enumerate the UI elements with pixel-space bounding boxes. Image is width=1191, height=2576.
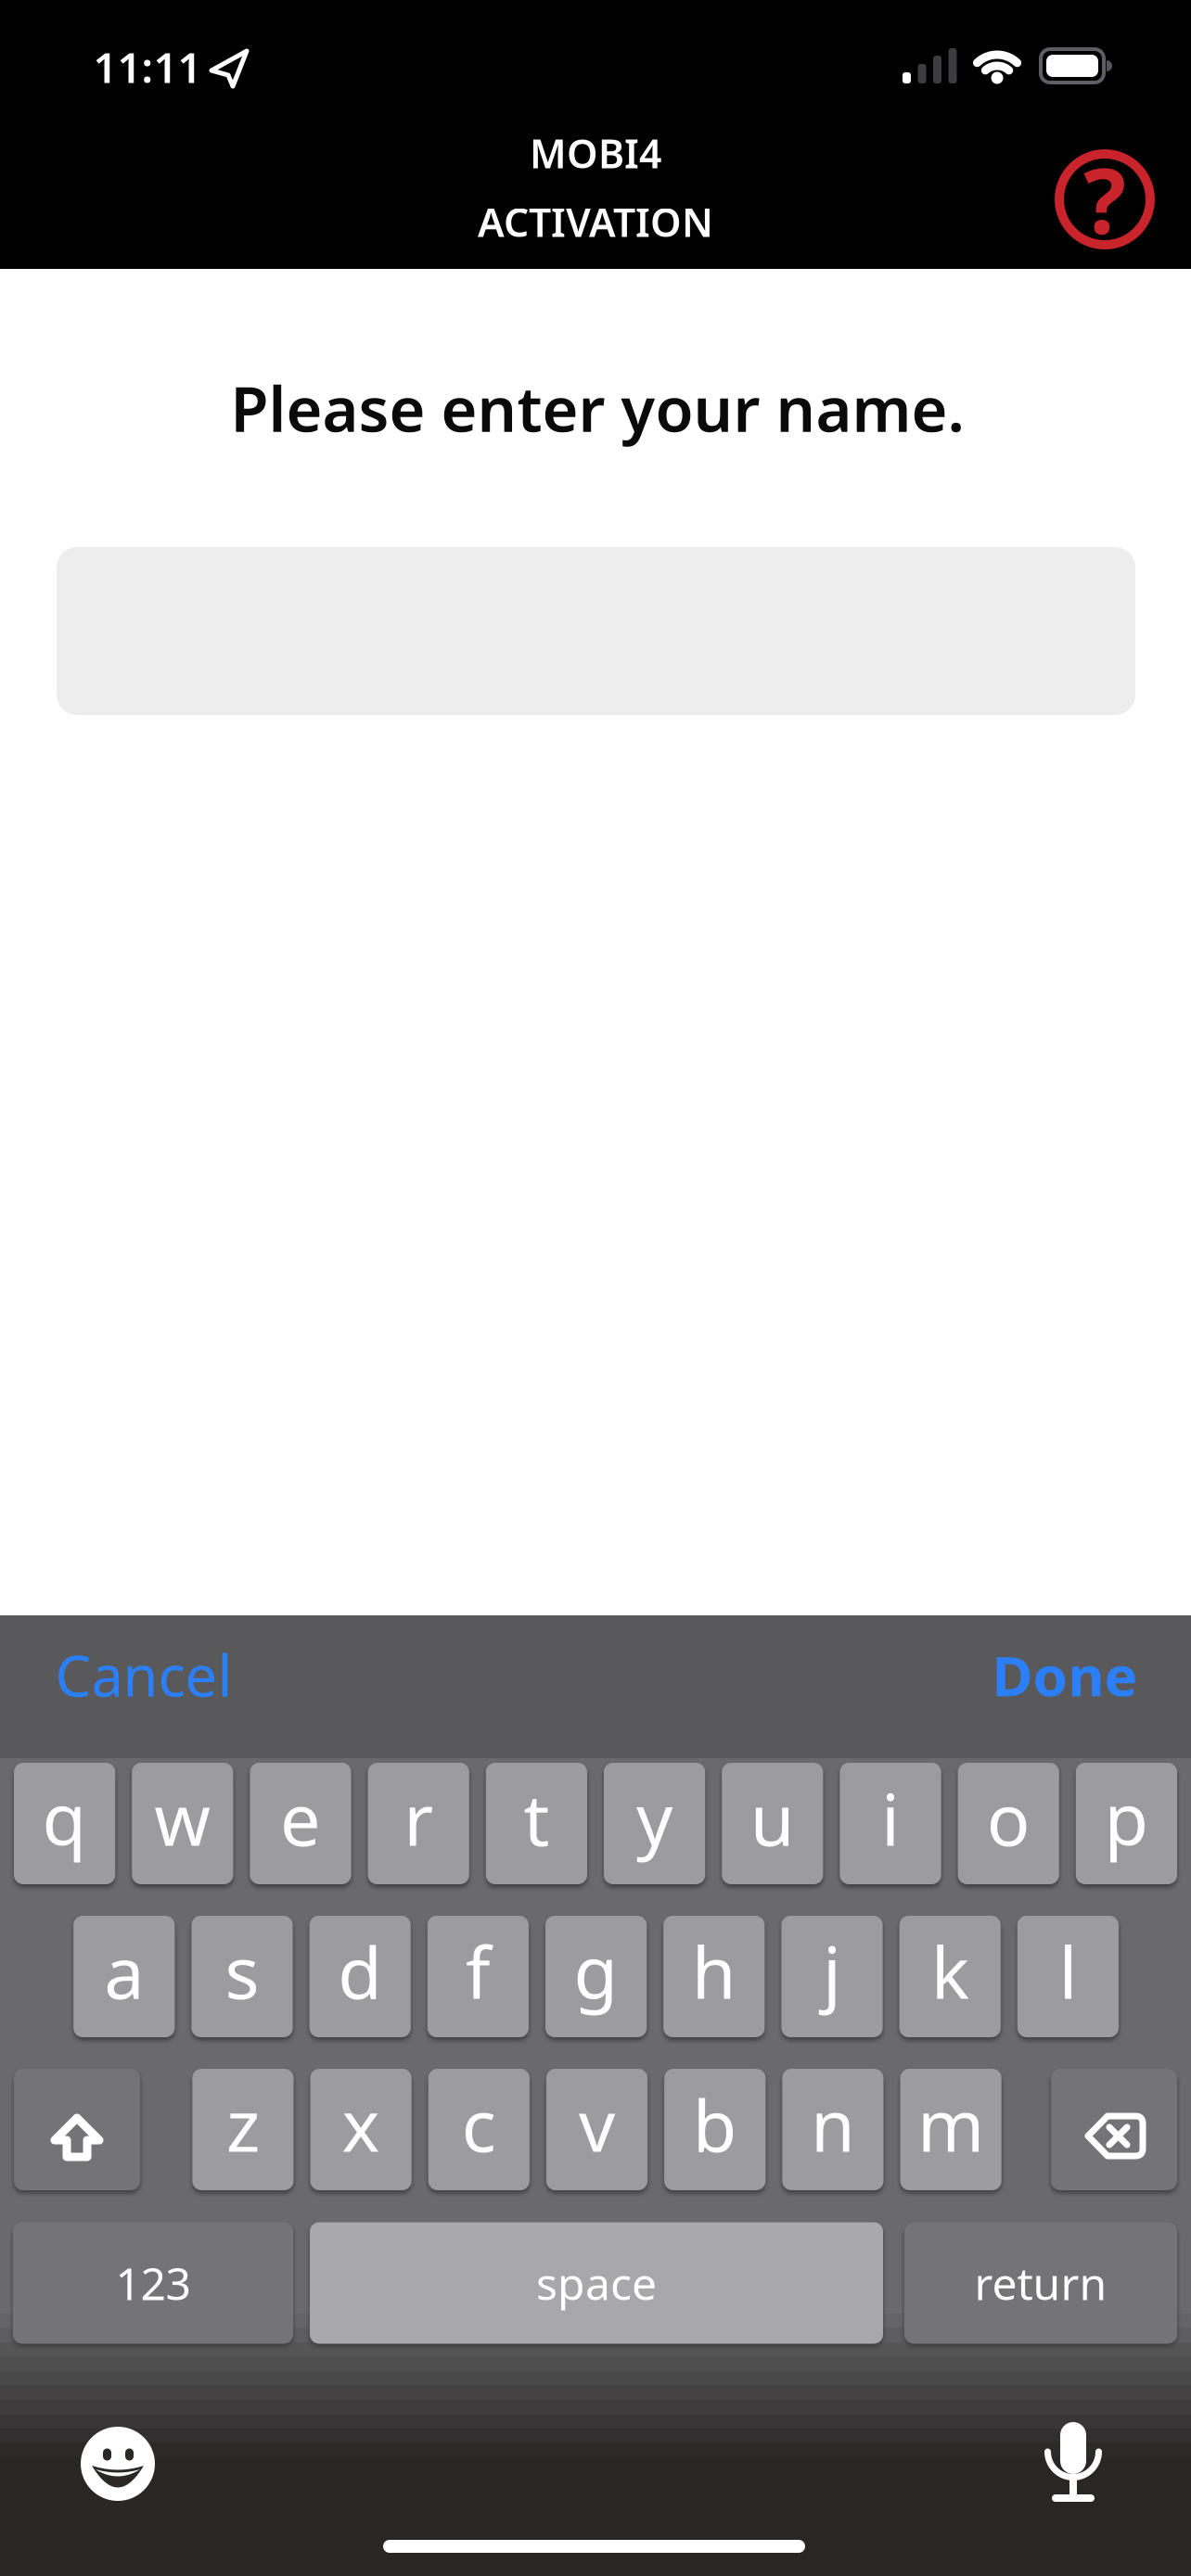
staticText: z [226,2076,260,2172]
staticText: Cancel [55,1637,232,1712]
staticText: g [574,1923,618,2019]
staticText: h [692,1923,736,2019]
button[interactable]: m [900,2069,1001,2190]
button[interactable]: n [782,2069,884,2190]
button[interactable]: x [310,2069,412,2190]
staticText: d [338,1923,382,2019]
button[interactable]: r [368,1763,469,1884]
button[interactable]: u [722,1763,823,1884]
button[interactable]: Emoji [76,2422,160,2506]
staticText: c [462,2076,496,2172]
staticText: i [881,1770,900,1866]
button[interactable]: f [427,1916,529,2037]
button[interactable]: j [781,1916,883,2037]
staticText: n [811,2076,855,2172]
button[interactable]: Delete [1051,2069,1177,2190]
button[interactable]: w [132,1763,233,1884]
button[interactable]: q [14,1763,115,1884]
button[interactable]: l [1017,1916,1119,2037]
button[interactable]: c [428,2069,530,2190]
staticText: Please enter your name. [231,367,964,449]
button[interactable]: Dictate [1031,2417,1115,2506]
staticText: ACTIVATION [478,195,713,248]
button[interactable]: d [309,1916,411,2037]
button[interactable]: g [545,1916,647,2037]
staticText: f [466,1923,491,2019]
staticText: p [1104,1770,1149,1866]
staticText: r [404,1770,433,1866]
staticText: e [280,1770,321,1866]
staticText: MOBI4 [530,127,661,179]
staticText: 11:11 [93,39,202,95]
button[interactable]: return [904,2222,1177,2344]
staticText: space [536,2253,657,2312]
staticText: v [579,2076,615,2172]
staticText: t [524,1770,549,1866]
button[interactable]: t [486,1763,587,1884]
staticText: a [104,1923,144,2019]
staticText: o [987,1770,1030,1866]
button[interactable]: Help [1055,149,1155,249]
staticText: 123 [115,2253,191,2312]
staticText: u [750,1770,795,1866]
staticText: m [917,2076,984,2172]
button[interactable]: p [1076,1763,1177,1884]
button[interactable]: Shift [14,2069,140,2190]
button[interactable]: e [250,1763,351,1884]
button[interactable]: y [604,1763,705,1884]
button[interactable]: 123 [13,2222,293,2344]
staticText: j [823,1923,841,2019]
staticText: q [42,1770,87,1866]
button[interactable]: o [958,1763,1059,1884]
button[interactable]: space [310,2222,883,2344]
button[interactable]: a [73,1916,175,2037]
button[interactable]: b [664,2069,766,2190]
staticText: return [974,2253,1107,2312]
staticText: Done [992,1638,1138,1712]
staticText: k [931,1923,969,2019]
staticText: y [636,1770,673,1866]
button[interactable]: s [191,1916,293,2037]
staticText: b [693,2076,737,2172]
staticText: s [225,1923,259,2019]
staticText: x [342,2076,380,2172]
staticText: ? [1083,140,1126,259]
staticText: l [1059,1923,1077,2019]
button[interactable]: z [192,2069,294,2190]
button[interactable]: h [663,1916,765,2037]
staticText: w [154,1770,211,1866]
button[interactable]: Done [992,1638,1138,1712]
button[interactable]: k [899,1916,1001,2037]
button[interactable]: i [840,1763,941,1884]
button[interactable]: v [546,2069,648,2190]
button[interactable]: Cancel [55,1637,232,1712]
